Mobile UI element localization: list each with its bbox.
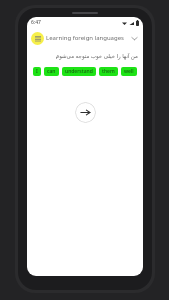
staticText: Learning foreign languages bbox=[46, 34, 124, 42]
button[interactable]: well bbox=[121, 67, 137, 76]
staticText: well bbox=[124, 68, 134, 75]
staticText: 6:47 bbox=[31, 19, 41, 26]
button[interactable]: understand bbox=[62, 67, 96, 76]
button[interactable]: Expand bbox=[128, 32, 140, 44]
staticText: them bbox=[102, 68, 115, 75]
button[interactable]: Next bbox=[75, 102, 96, 123]
staticText: can bbox=[47, 68, 56, 75]
button[interactable]: Learning foreign languages bbox=[46, 34, 124, 42]
button[interactable]: can bbox=[44, 67, 59, 76]
staticText: من آنها را خیلی خوب متوجه می‌شوم bbox=[55, 52, 138, 59]
staticText: I bbox=[36, 68, 38, 75]
button[interactable]: I bbox=[33, 67, 41, 76]
button[interactable]: them bbox=[99, 67, 118, 76]
staticText: understand bbox=[65, 68, 93, 75]
button[interactable]: Menu bbox=[31, 32, 44, 45]
